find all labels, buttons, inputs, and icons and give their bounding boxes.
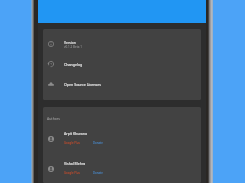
button[interactable]: Google Plus [64,141,80,145]
other: Author [48,136,54,142]
staticText: v0.1.2 Beta 1 [64,45,82,49]
button[interactable]: Author [43,153,201,183]
button[interactable]: Donate [93,171,103,175]
staticText: Changelog [64,62,83,67]
other: Version [48,41,54,47]
button[interactable]: Open source licenses [43,74,201,94]
staticText: Vishal Mehra [64,161,86,166]
staticText: Arpit Khurana [64,131,87,136]
other: Open source licenses [48,81,54,87]
staticText: Authors [47,116,60,121]
button[interactable]: Changelog [43,54,201,74]
button[interactable]: Version [43,34,201,54]
other: Changelog [48,61,54,67]
staticText: Version [64,40,76,45]
staticText: Open Source Licenses [64,82,101,87]
other: Author [48,166,54,172]
button[interactable]: Author [43,123,201,153]
button[interactable]: Donate [93,141,103,145]
button[interactable]: Google Plus [64,171,80,175]
